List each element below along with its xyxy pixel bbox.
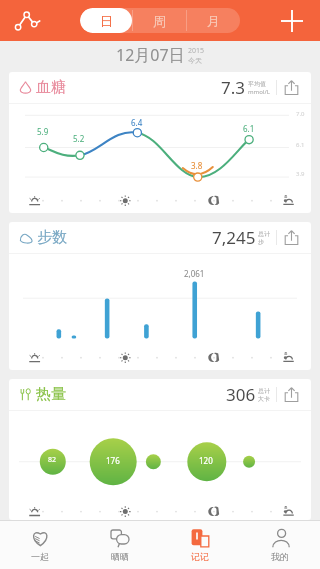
staticText: 平均值 <box>248 80 266 88</box>
staticText: 6.1 <box>296 141 305 149</box>
staticText: 306 <box>226 383 256 406</box>
staticText: 6.1 <box>243 123 255 134</box>
button[interactable]: 晒晒 <box>80 521 160 569</box>
staticText: 血糖 <box>36 78 66 97</box>
staticText: 7.0 <box>296 110 305 118</box>
staticText: 176 <box>106 455 120 466</box>
staticText: 一起 <box>31 551 49 562</box>
staticText: 步数 <box>37 228 67 247</box>
staticText: 总计 <box>258 387 270 395</box>
button[interactable]: Share <box>277 223 306 252</box>
staticText: 2015 <box>188 46 205 56</box>
button[interactable]: Add <box>272 1 312 41</box>
staticText: 日 <box>100 13 113 29</box>
button[interactable]: Trends <box>8 1 48 41</box>
staticText: 晒晒 <box>111 551 129 562</box>
staticText: 120 <box>199 455 213 466</box>
staticText: 月 <box>207 13 220 29</box>
staticText: 我的 <box>271 551 289 562</box>
staticText: 步 <box>258 238 264 246</box>
staticText: 12月07日 <box>116 44 185 66</box>
staticText: 大卡 <box>258 395 270 403</box>
staticText: mmol/L <box>248 88 270 96</box>
button[interactable]: 周 <box>133 8 186 33</box>
staticText: 周 <box>153 13 166 29</box>
staticText: 7.3 <box>221 76 246 99</box>
staticText: 5.2 <box>73 133 85 144</box>
staticText: 6.4 <box>131 117 143 128</box>
staticText: 82 <box>48 455 57 465</box>
staticText: 2,061 <box>184 268 205 279</box>
button[interactable]: 一起 <box>0 521 80 569</box>
button[interactable]: 月 <box>187 8 240 33</box>
button[interactable]: 日 <box>80 8 132 33</box>
button[interactable]: Share <box>277 380 306 409</box>
staticText: 今天 <box>188 56 202 65</box>
staticText: 7,245 <box>212 226 256 249</box>
staticText: 3.8 <box>191 160 203 171</box>
button[interactable]: 记记 <box>160 521 240 569</box>
staticText: 热量 <box>36 385 66 404</box>
staticText: 总计 <box>258 230 270 238</box>
button[interactable]: Share <box>277 73 306 102</box>
staticText: 5.9 <box>37 126 49 137</box>
staticText: 记记 <box>191 551 209 562</box>
button[interactable]: 我的 <box>240 521 320 569</box>
staticText: 3.9 <box>296 170 305 178</box>
